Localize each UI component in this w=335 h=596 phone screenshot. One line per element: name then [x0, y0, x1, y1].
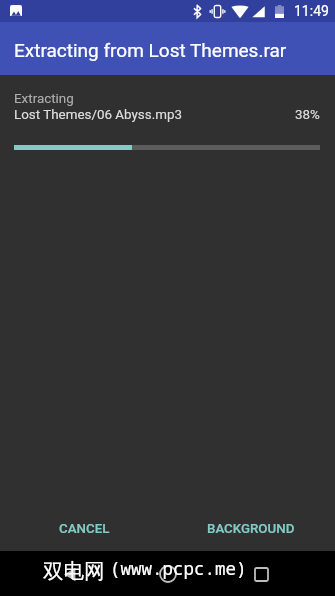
staticText: (www.pcpc.me) — [110, 556, 247, 580]
staticText: 38% — [295, 107, 320, 123]
staticText: Lost Themes/06 Abyss.mp3 — [14, 107, 182, 123]
staticText: CANCEL — [59, 521, 110, 537]
button[interactable]: BACKGROUND — [193, 512, 309, 546]
staticText: Extracting — [14, 91, 74, 107]
staticText: 11:49 — [294, 3, 329, 19]
button[interactable]: Back — [53, 558, 85, 590]
button[interactable]: Recent apps — [245, 558, 277, 590]
button[interactable]: Home — [152, 558, 184, 590]
button[interactable]: CANCEL — [45, 512, 124, 546]
staticText: BACKGROUND — [207, 521, 295, 537]
staticText: 双电网 — [43, 558, 105, 584]
staticText: Extracting from Lost Themes.rar — [14, 39, 287, 61]
